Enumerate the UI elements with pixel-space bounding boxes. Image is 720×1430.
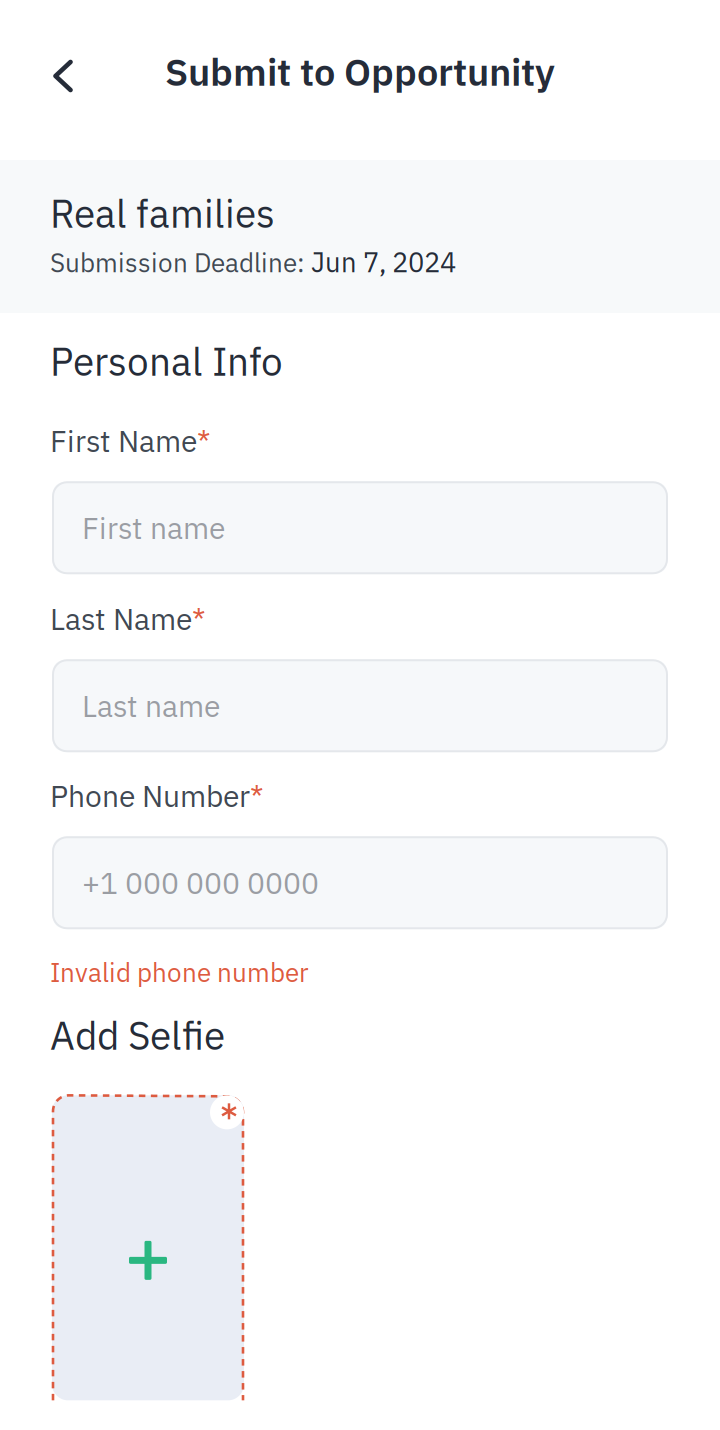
staticText: First name — [82, 508, 225, 547]
staticText: Submit to Opportunity — [165, 47, 555, 96]
staticText: * — [250, 776, 264, 815]
staticText: Last Name — [50, 599, 192, 638]
staticText: * — [197, 421, 211, 460]
staticText: * — [192, 599, 206, 638]
staticText: Submission Deadline: — [50, 246, 311, 279]
staticText: Last name — [82, 686, 220, 725]
staticText: Add Selfie — [50, 1010, 225, 1060]
button[interactable]: Add selfie — [52, 1095, 244, 1400]
staticText: Real families — [50, 188, 275, 238]
staticText: Personal Info — [50, 336, 283, 386]
button[interactable]: Back — [31, 44, 95, 116]
staticText: Jun 7, 2024 — [311, 244, 456, 280]
staticText: First Name — [50, 421, 197, 460]
staticText: Phone Number — [50, 776, 250, 815]
staticText: +1 000 000 0000 — [82, 863, 319, 902]
staticText: Invalid phone number — [50, 955, 309, 989]
